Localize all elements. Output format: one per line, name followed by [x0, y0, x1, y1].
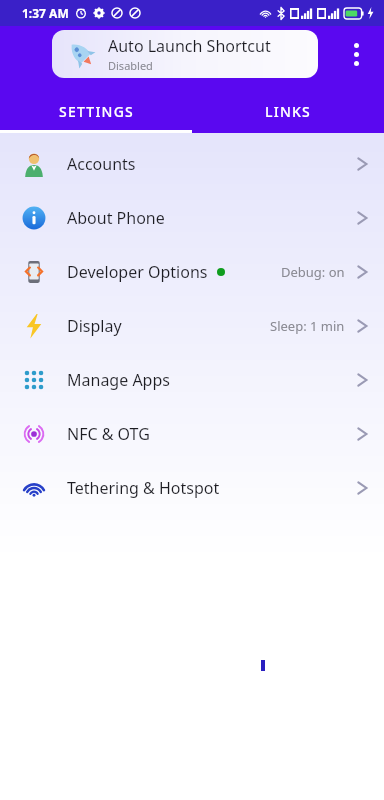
staticText: Display	[67, 315, 122, 337]
staticText: 1:37 AM	[22, 5, 69, 21]
staticText: Accounts	[67, 153, 136, 175]
button[interactable]: About Phone	[0, 191, 384, 245]
button[interactable]: Manage Apps	[0, 353, 384, 407]
button[interactable]: Auto Launch Shortcut	[52, 30, 318, 78]
staticText: About Phone	[67, 207, 165, 229]
staticText: Developer Options	[67, 261, 208, 283]
staticText: Debug: on	[281, 263, 345, 281]
staticText: Tethering & Hotspot	[67, 477, 220, 499]
staticText: NFC & OTG	[67, 423, 150, 445]
button[interactable]: Tethering & Hotspot	[0, 461, 384, 515]
button[interactable]: NFC & OTG	[0, 407, 384, 461]
staticText: SETTINGS	[59, 102, 134, 121]
staticText: Disabled	[108, 58, 153, 73]
staticText: Auto Launch Shortcut	[108, 35, 271, 57]
button[interactable]: Developer Options	[0, 245, 384, 299]
button[interactable]: LINKS	[192, 89, 384, 133]
button[interactable]: Display	[0, 299, 384, 353]
button[interactable]: More options	[332, 30, 380, 78]
staticText: Sleep: 1 min	[270, 317, 345, 335]
button[interactable]: SETTINGS	[0, 89, 192, 133]
staticText: LINKS	[265, 102, 311, 121]
staticText: Manage Apps	[67, 369, 170, 391]
button[interactable]: Accounts	[0, 137, 384, 191]
